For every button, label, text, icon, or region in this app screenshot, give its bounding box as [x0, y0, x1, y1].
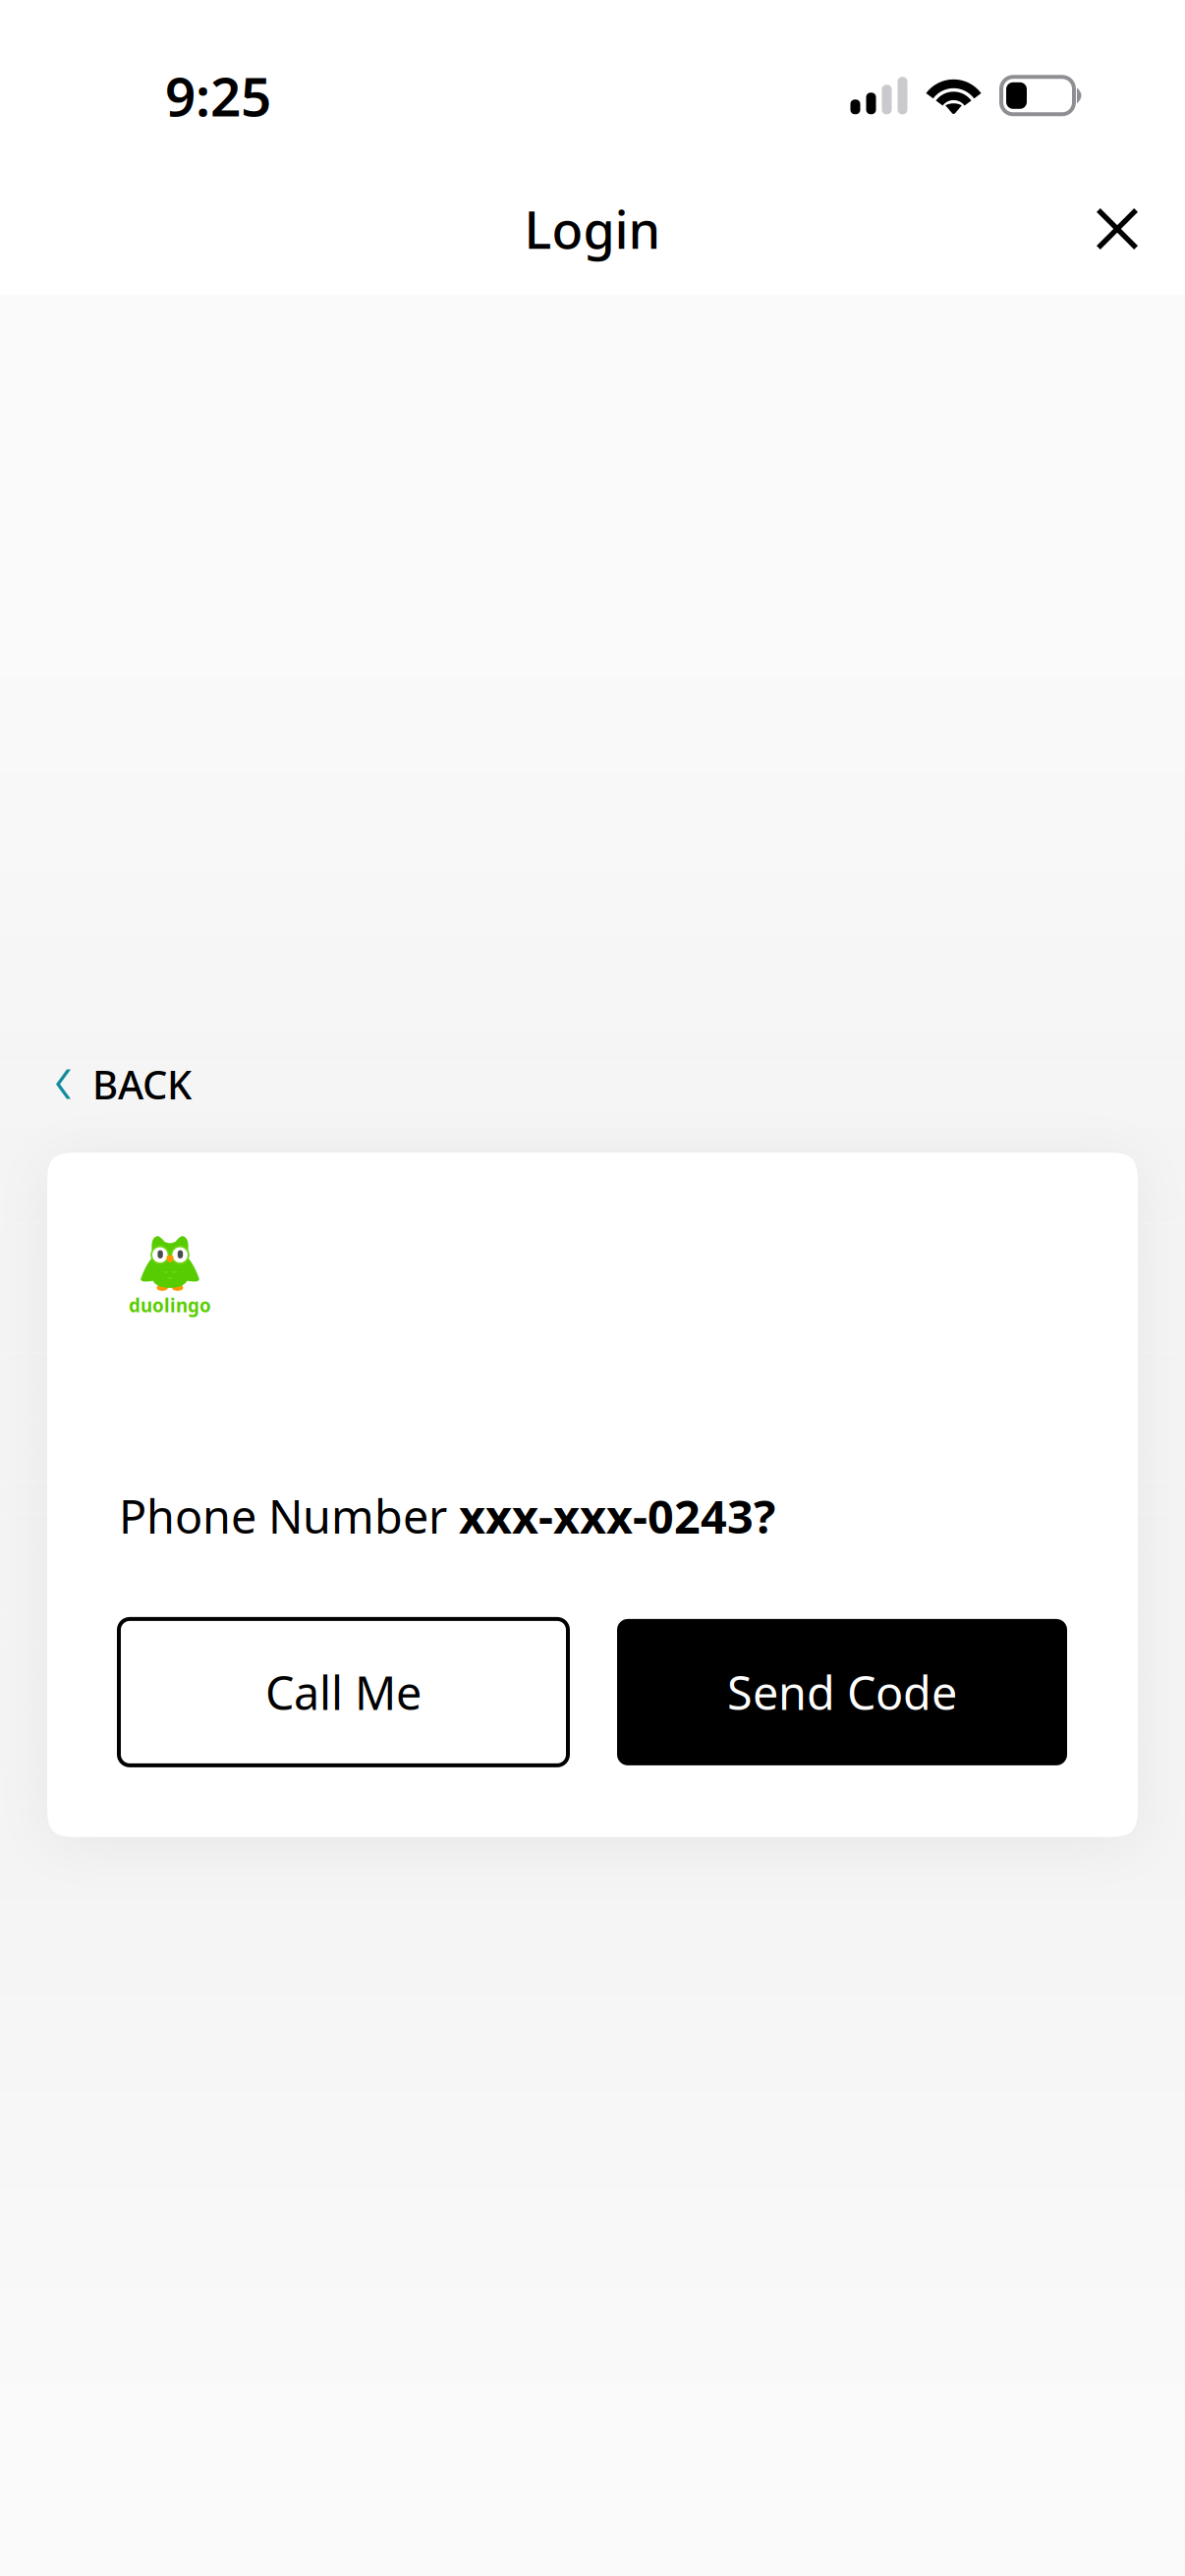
staticText: Send Code: [727, 1662, 957, 1723]
staticText: 9:25: [165, 60, 271, 131]
staticText: BACK: [92, 1058, 192, 1110]
staticText: duolingo: [129, 1293, 211, 1317]
staticText: Call Me: [265, 1662, 422, 1723]
button[interactable]: Close: [1066, 178, 1168, 280]
button[interactable]: Send Code: [617, 1619, 1067, 1765]
staticText: Login: [524, 195, 661, 263]
button[interactable]: Call Me: [119, 1619, 568, 1765]
staticText: Phone Number xxx-xxx-0243?: [119, 1485, 775, 1546]
button[interactable]: BACK: [0, 1038, 215, 1130]
